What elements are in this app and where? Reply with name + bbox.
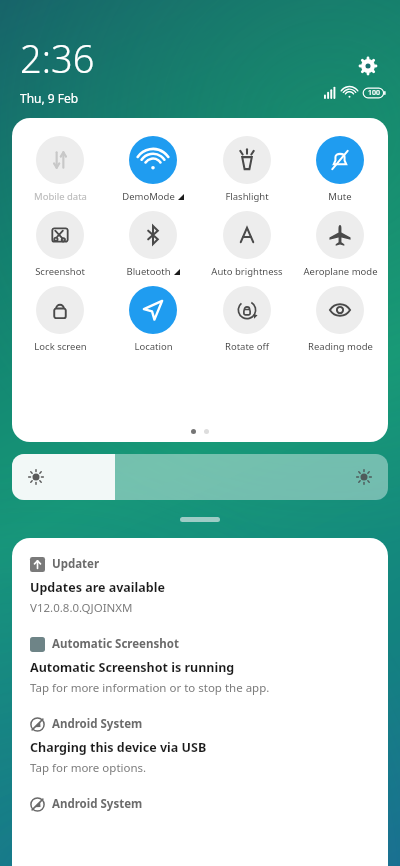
staticText: Aeroplane mode [303, 265, 378, 278]
staticText: Flashlight [225, 190, 269, 203]
staticText: Screenshot [35, 265, 85, 278]
button[interactable]: Screenshot [15, 211, 105, 278]
button[interactable]: Lock screen [15, 286, 105, 353]
button[interactable]: Mobile data [15, 136, 105, 203]
button[interactable]: Bluetooth [108, 211, 198, 278]
button[interactable]: Android System [30, 796, 370, 812]
staticText: Thu, 9 Feb [20, 90, 79, 106]
staticText: Bluetooth [126, 265, 171, 278]
staticText: Mobile data [34, 190, 87, 203]
staticText: V12.0.8.0.QJOINXM [30, 600, 133, 616]
staticText: Tap for more information or to stop the … [30, 680, 270, 696]
button[interactable]: Updater [30, 556, 370, 616]
staticText: DemoMode [122, 190, 175, 203]
button[interactable]: Aeroplane mode [295, 211, 385, 278]
staticText: Automatic Screenshot is running [30, 659, 235, 676]
staticText: Updater [52, 556, 100, 572]
staticText: Auto brightness [211, 265, 283, 278]
button[interactable]: Flashlight [202, 136, 292, 203]
staticText: Reading mode [308, 340, 373, 353]
button[interactable]: DemoMode [108, 136, 198, 203]
staticText: Android System [52, 716, 143, 732]
staticText: Charging this device via USB [30, 739, 207, 756]
staticText: Location [134, 340, 173, 353]
button[interactable]: Settings [350, 48, 386, 84]
button[interactable]: Android System [30, 716, 370, 776]
staticText: Updates are available [30, 579, 165, 596]
staticText: Mute [328, 190, 352, 203]
staticText: Lock screen [34, 340, 87, 353]
staticText: 100 [368, 88, 381, 98]
button[interactable]: Location [108, 286, 198, 353]
button[interactable] [12, 454, 388, 500]
button[interactable]: Automatic Screenshot [30, 636, 370, 696]
staticText: Automatic Screenshot [52, 636, 179, 652]
button[interactable]: Auto brightness [202, 211, 292, 278]
button[interactable]: Rotate off [202, 286, 292, 353]
staticText: Tap for more options. [30, 760, 147, 776]
button[interactable]: Mute [295, 136, 385, 203]
staticText: Rotate off [225, 340, 269, 353]
staticText: 2:36 [20, 32, 95, 84]
staticText: Android System [52, 796, 143, 812]
button[interactable]: Reading mode [295, 286, 385, 353]
